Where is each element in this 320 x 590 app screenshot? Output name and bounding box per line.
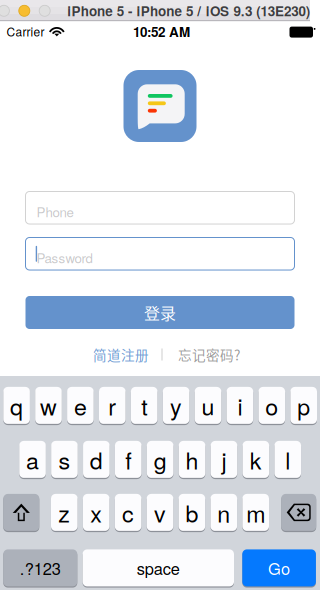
- button[interactable]: 忘记密码?: [177, 346, 241, 362]
- button[interactable]: z: [51, 493, 78, 531]
- staticText: 简道注册: [93, 345, 149, 364]
- staticText: a: [26, 443, 39, 476]
- button[interactable]: h: [179, 440, 205, 478]
- button[interactable]: Shift: [3, 493, 39, 531]
- button[interactable]: c: [115, 493, 141, 531]
- button[interactable]: q: [3, 386, 30, 424]
- button[interactable]: s: [51, 440, 78, 478]
- staticText: s: [58, 443, 70, 476]
- staticText: .?123: [20, 556, 61, 580]
- button[interactable]: Delete: [281, 493, 316, 531]
- staticText: 忘记密码?: [178, 345, 240, 364]
- button[interactable]: Zoom: [39, 5, 50, 16]
- staticText: Carrier: [7, 23, 45, 40]
- staticText: k: [250, 443, 262, 476]
- staticText: d: [90, 443, 103, 476]
- staticText: n: [217, 496, 230, 529]
- staticText: v: [154, 496, 166, 529]
- button[interactable]: f: [115, 440, 142, 478]
- button[interactable]: o: [258, 386, 285, 424]
- staticText: iPhone 5 - iPhone 5 / iOS 9.3 (13E230): [67, 1, 310, 20]
- button[interactable]: w: [35, 386, 62, 424]
- button[interactable]: j: [211, 440, 237, 478]
- staticText: 登录: [144, 301, 176, 324]
- button[interactable]: n: [210, 493, 237, 531]
- staticText: h: [186, 443, 199, 476]
- staticText: Password: [36, 248, 92, 267]
- button[interactable]: b: [179, 493, 205, 531]
- button[interactable]: r: [99, 386, 126, 424]
- button[interactable]: l: [274, 440, 301, 478]
- button[interactable]: Password: [25, 237, 294, 270]
- staticText: f: [125, 443, 131, 476]
- staticText: j: [221, 443, 226, 476]
- button[interactable]: g: [147, 440, 173, 478]
- button[interactable]: 登录: [25, 296, 294, 329]
- button[interactable]: space: [83, 549, 234, 587]
- staticText: i: [237, 389, 242, 422]
- button[interactable]: p: [290, 386, 317, 424]
- staticText: e: [74, 389, 87, 422]
- button[interactable]: t: [131, 386, 157, 424]
- button[interactable]: u: [195, 386, 221, 424]
- button[interactable]: k: [243, 440, 269, 478]
- staticText: b: [185, 496, 198, 529]
- staticText: w: [40, 389, 57, 422]
- button[interactable]: e: [67, 386, 94, 424]
- button[interactable]: d: [83, 440, 110, 478]
- staticText: l: [285, 443, 290, 476]
- button[interactable]: Go: [242, 549, 316, 587]
- button[interactable]: v: [147, 493, 173, 531]
- button[interactable]: y: [163, 386, 189, 424]
- button[interactable]: .?123: [3, 549, 77, 587]
- staticText: m: [246, 496, 265, 529]
- staticText: u: [201, 389, 214, 422]
- button[interactable]: a: [19, 440, 46, 478]
- staticText: g: [154, 443, 167, 476]
- button[interactable]: Minimize: [19, 5, 30, 16]
- button[interactable]: i: [227, 386, 253, 424]
- staticText: x: [90, 496, 102, 529]
- button[interactable]: Phone: [25, 191, 294, 224]
- button[interactable]: Close: [0, 5, 9, 16]
- staticText: 10:52 AM: [133, 22, 190, 41]
- staticText: p: [297, 389, 310, 422]
- button[interactable]: x: [83, 493, 109, 531]
- staticText: o: [265, 389, 278, 422]
- button[interactable]: m: [242, 493, 269, 531]
- button[interactable]: 简道注册: [92, 346, 150, 362]
- staticText: t: [141, 389, 147, 422]
- staticText: space: [137, 556, 180, 580]
- staticText: z: [58, 496, 70, 529]
- staticText: r: [108, 389, 116, 422]
- staticText: Go: [268, 556, 290, 580]
- staticText: q: [10, 389, 23, 422]
- staticText: Phone: [36, 202, 73, 221]
- staticText: y: [170, 389, 182, 422]
- staticText: c: [122, 496, 134, 529]
